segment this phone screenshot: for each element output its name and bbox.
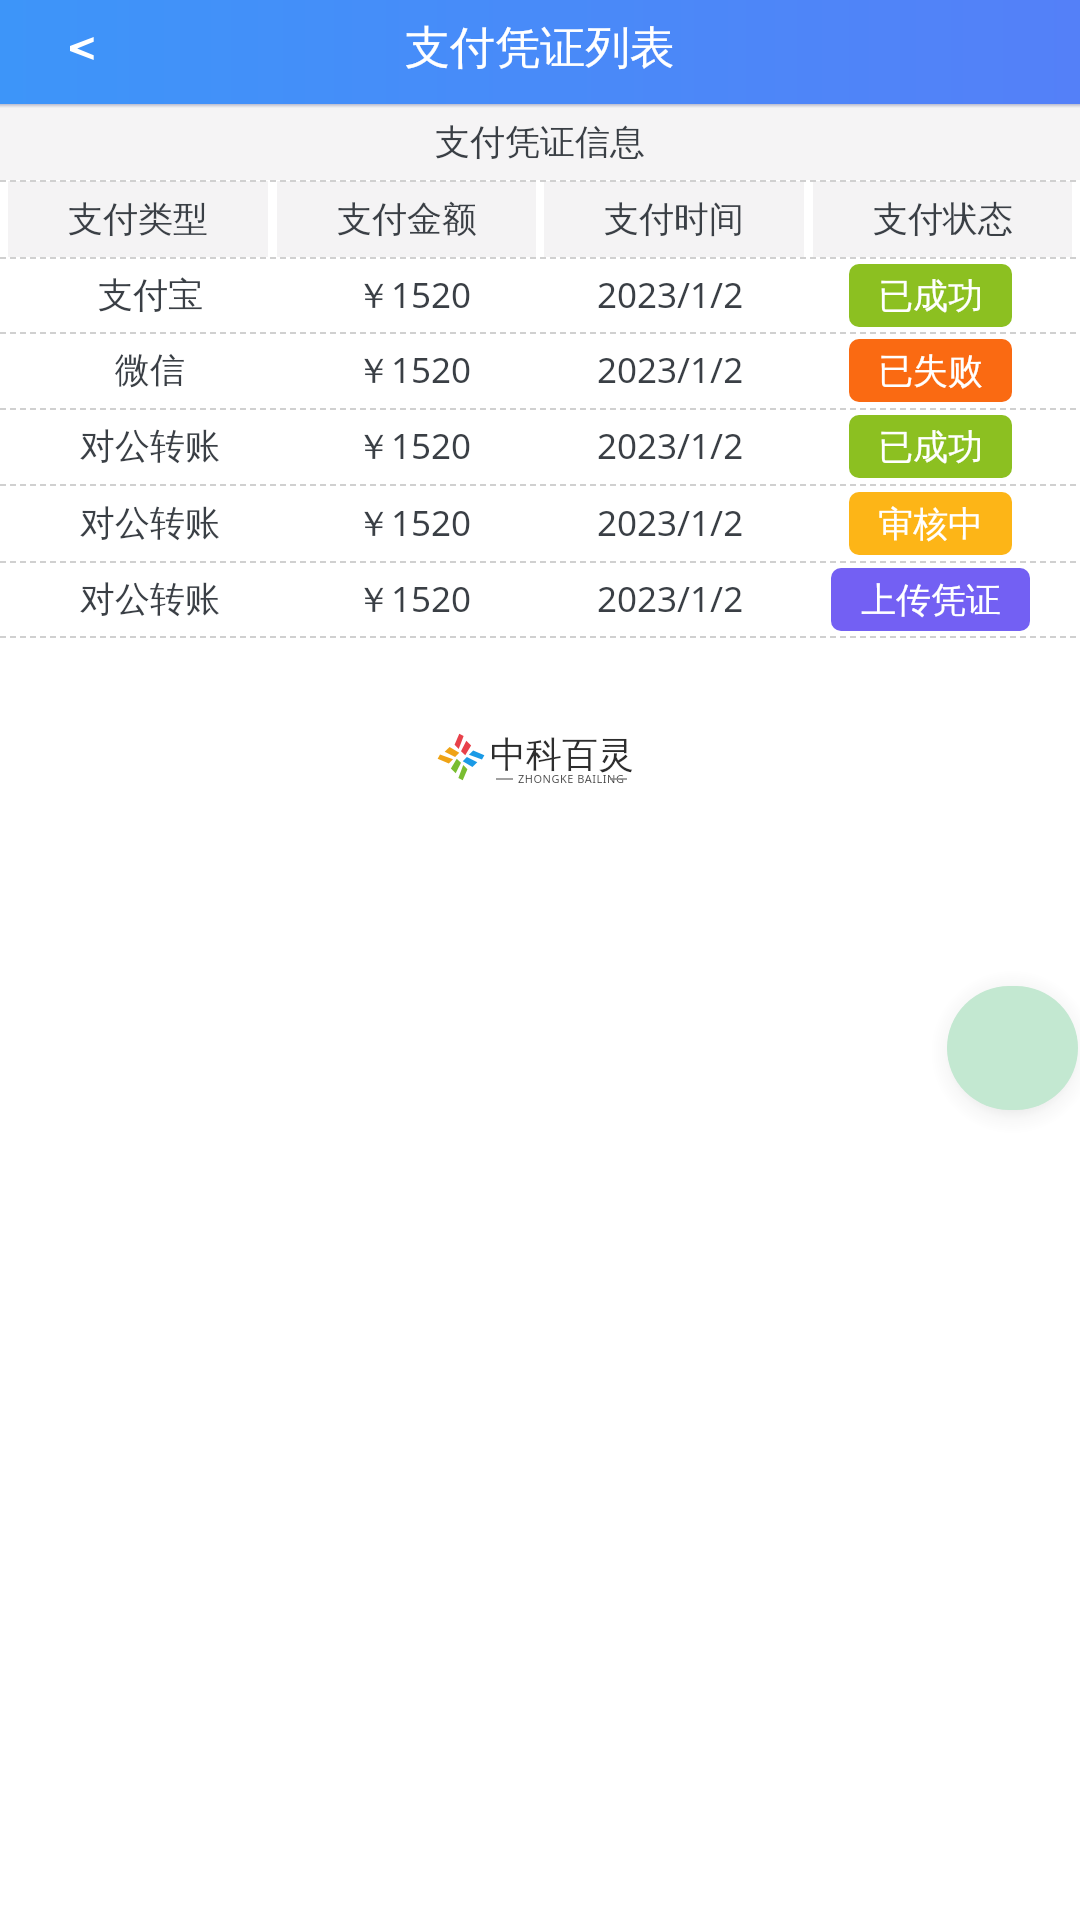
button[interactable]: 对公转账 (0, 484, 1080, 561)
staticText: ￥1520 (356, 271, 472, 319)
staticText: 对公转账 (80, 501, 220, 545)
staticText: 支付凭证信息 (435, 120, 645, 164)
staticText: 对公转账 (80, 424, 220, 468)
staticText: 支付时间 (604, 197, 744, 241)
staticText: 中科百灵 (490, 732, 634, 777)
button[interactable]: 微信 (0, 332, 1080, 408)
staticText: 支付宝 (98, 273, 203, 317)
staticText: ￥1520 (356, 346, 472, 394)
staticText: 支付类型 (68, 197, 208, 241)
button[interactable]: 对公转账 (0, 561, 1080, 636)
staticText: 2023/1/2 (597, 422, 744, 470)
staticText: 支付凭证列表 (405, 20, 675, 77)
staticText: 支付状态 (873, 197, 1013, 241)
button[interactable]: 上传凭证 (831, 568, 1030, 631)
staticText: 支付金额 (337, 197, 477, 241)
button[interactable]: 审核中 (849, 492, 1012, 555)
staticText: 已成功 (878, 425, 983, 469)
staticText: ￥1520 (356, 422, 472, 470)
staticText: 2023/1/2 (597, 499, 744, 547)
staticText: 对公转账 (80, 577, 220, 621)
staticText: ￥1520 (356, 499, 472, 547)
button[interactable]: 支付宝 (0, 257, 1080, 332)
staticText: 2023/1/2 (597, 575, 744, 623)
button[interactable]: 对公转账 (0, 408, 1080, 484)
staticText: 已成功 (878, 274, 983, 318)
button[interactable]: 已成功 (849, 264, 1012, 327)
staticText: 2023/1/2 (597, 346, 744, 394)
staticText: 上传凭证 (861, 578, 1001, 622)
staticText: ZHONGKE BAILING (518, 771, 625, 786)
button[interactable]: Back (48, 19, 114, 85)
staticText: 微信 (115, 348, 185, 392)
staticText: ￥1520 (356, 575, 472, 623)
button[interactable]: Add payment voucher (947, 986, 1078, 1110)
button[interactable]: 已失败 (849, 339, 1012, 402)
staticText: 审核中 (878, 502, 983, 546)
button[interactable]: 已成功 (849, 415, 1012, 478)
staticText: 已失败 (878, 349, 983, 393)
staticText: 2023/1/2 (597, 271, 744, 319)
